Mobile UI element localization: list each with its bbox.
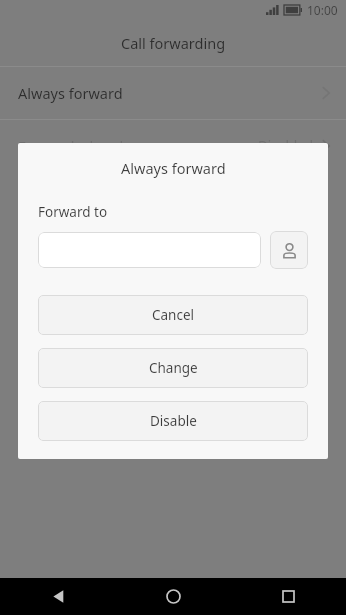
staticText: Always forward [18,83,123,103]
staticText: Cancel [152,306,195,324]
staticText: 10:00 [307,2,338,18]
staticText: Forward when busy [18,136,152,156]
button[interactable]: Change [38,348,308,388]
staticText: Forward to [38,203,108,221]
button[interactable]: Always forward [0,67,346,119]
button[interactable]: Cancel [38,295,308,335]
button[interactable]: Home [116,578,231,615]
staticText: Always forward [121,158,226,178]
button[interactable]: Back [0,578,116,615]
button[interactable]: Forward to number [38,232,261,268]
button[interactable]: Forward when busy [0,120,346,172]
staticText: Change [149,359,198,377]
staticText: Call forwarding [121,33,226,53]
staticText: Disable [150,412,197,430]
button[interactable]: Recent apps [231,578,346,615]
button[interactable]: Disable [38,401,308,441]
button[interactable]: Pick contact [270,231,308,269]
staticText: Disabled [258,137,314,155]
